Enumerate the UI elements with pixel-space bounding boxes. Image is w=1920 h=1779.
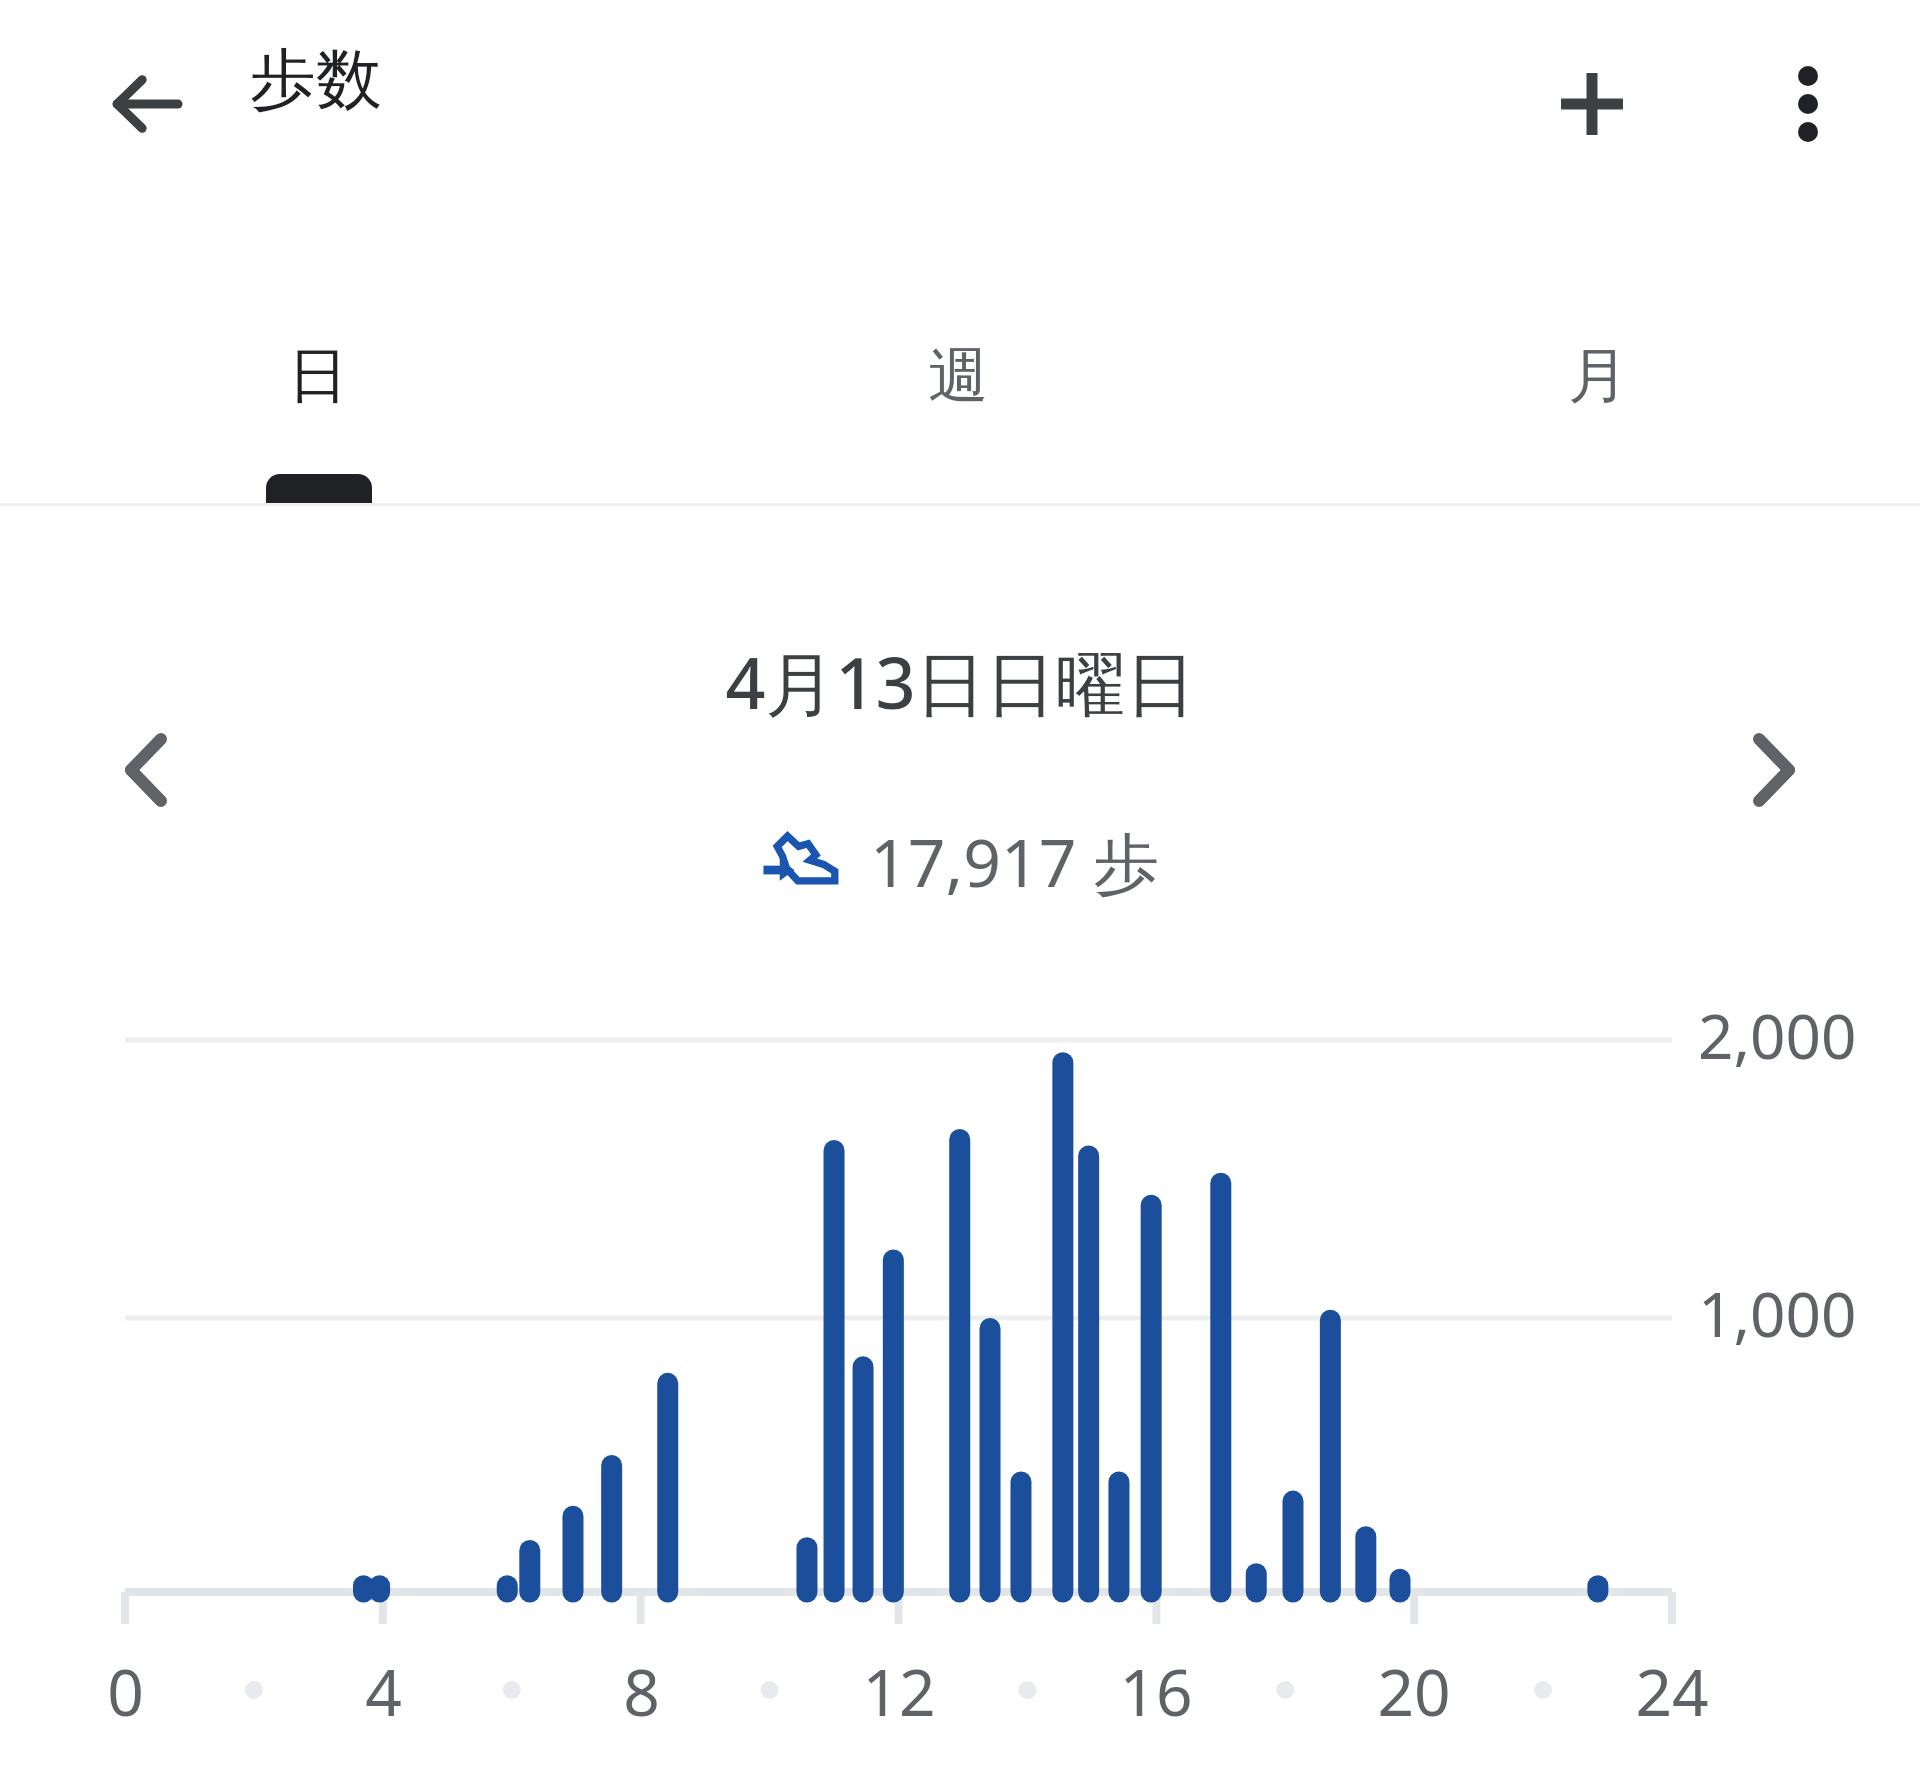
button[interactable]: 週 bbox=[745, 248, 1171, 503]
staticText: 12 bbox=[862, 1648, 936, 1735]
button[interactable]: More options bbox=[1748, 44, 1868, 164]
staticText: 24 bbox=[1635, 1648, 1709, 1735]
button[interactable]: Previous day bbox=[86, 710, 206, 830]
staticText: 4 bbox=[365, 1648, 402, 1735]
staticText: 月 bbox=[1568, 338, 1628, 414]
staticText: 日 bbox=[288, 338, 348, 414]
staticText: 4月13日日曜日 bbox=[725, 634, 1196, 730]
staticText: 歩数 bbox=[250, 38, 382, 121]
staticText: 2,000 bbox=[1698, 993, 1857, 1077]
staticText: 20 bbox=[1377, 1648, 1451, 1735]
staticText: 0 bbox=[107, 1648, 144, 1735]
button[interactable]: Next day bbox=[1714, 710, 1834, 830]
button[interactable]: Add bbox=[1532, 44, 1652, 164]
staticText: 17,917 歩 bbox=[870, 816, 1160, 906]
staticText: 8 bbox=[623, 1648, 660, 1735]
button[interactable]: Back bbox=[86, 44, 206, 164]
staticText: 週 bbox=[928, 338, 988, 414]
button[interactable]: 日 bbox=[105, 248, 531, 503]
button[interactable]: 月 bbox=[1385, 248, 1811, 503]
staticText: 1,000 bbox=[1698, 1271, 1857, 1355]
staticText: 16 bbox=[1119, 1648, 1193, 1735]
